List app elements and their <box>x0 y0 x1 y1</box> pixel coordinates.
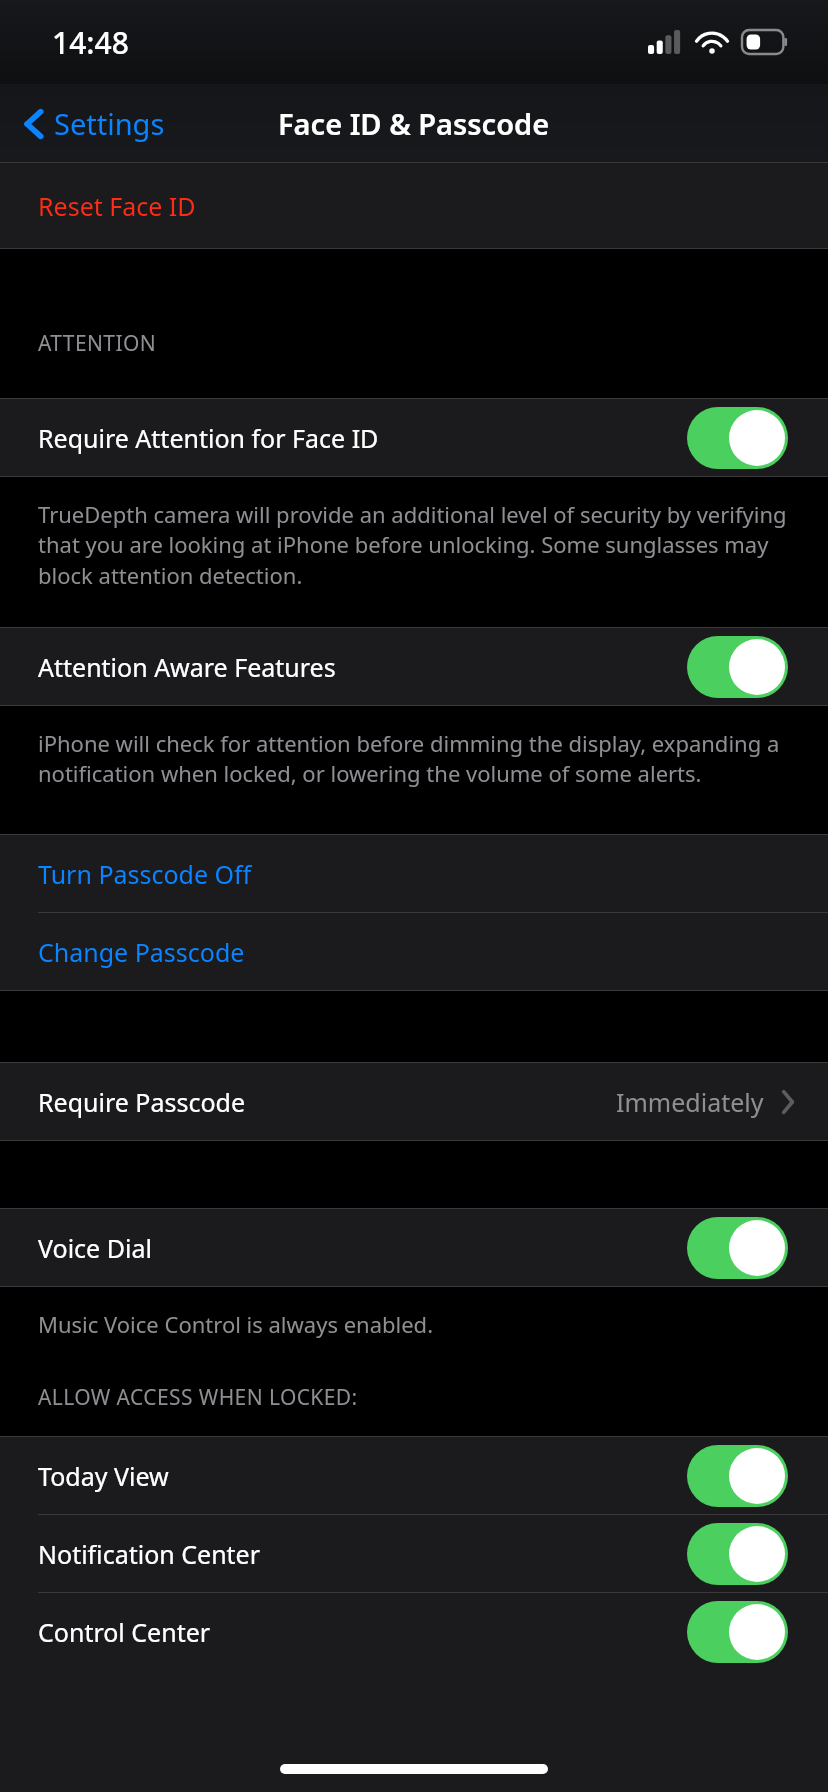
staticText: TrueDepth camera will provide an additio… <box>38 499 790 591</box>
staticText: Immediately <box>616 1085 764 1119</box>
staticText: Music Voice Control is always enabled. <box>38 1309 434 1339</box>
staticText: Turn Passcode Off <box>38 857 252 891</box>
button[interactable]: Reset Face ID <box>0 163 828 248</box>
button[interactable]: Today View <box>0 1437 828 1514</box>
button[interactable]: Change Passcode <box>0 913 828 990</box>
staticText: 14:48 <box>52 22 129 63</box>
button[interactable]: Attention Aware Features <box>0 628 828 705</box>
button[interactable]: Require Passcode <box>0 1063 828 1140</box>
staticText: Reset Face ID <box>38 189 196 223</box>
button[interactable]: Notification Center <box>0 1515 828 1592</box>
staticText: Voice Dial <box>38 1231 152 1265</box>
button[interactable]: Voice Dial <box>0 1209 828 1286</box>
staticText: Today View <box>38 1459 169 1493</box>
staticText: ATTENTION <box>38 329 157 358</box>
button[interactable]: Settings <box>0 104 175 143</box>
staticText: Require Attention for Face ID <box>38 421 379 455</box>
button[interactable]: Require Attention for Face ID <box>0 399 828 476</box>
button[interactable]: Control Center <box>0 1593 828 1670</box>
staticText: Require Passcode <box>38 1085 246 1119</box>
staticText: Face ID & Passcode <box>278 104 550 143</box>
button[interactable]: Turn Passcode Off <box>0 835 828 912</box>
staticText: Attention Aware Features <box>38 650 336 684</box>
staticText: ALLOW ACCESS WHEN LOCKED: <box>38 1383 358 1412</box>
staticText: Settings <box>54 104 165 143</box>
staticText: Change Passcode <box>38 935 245 969</box>
staticText: Notification Center <box>38 1537 261 1571</box>
staticText: iPhone will check for attention before d… <box>38 728 790 789</box>
staticText: Control Center <box>38 1615 211 1649</box>
